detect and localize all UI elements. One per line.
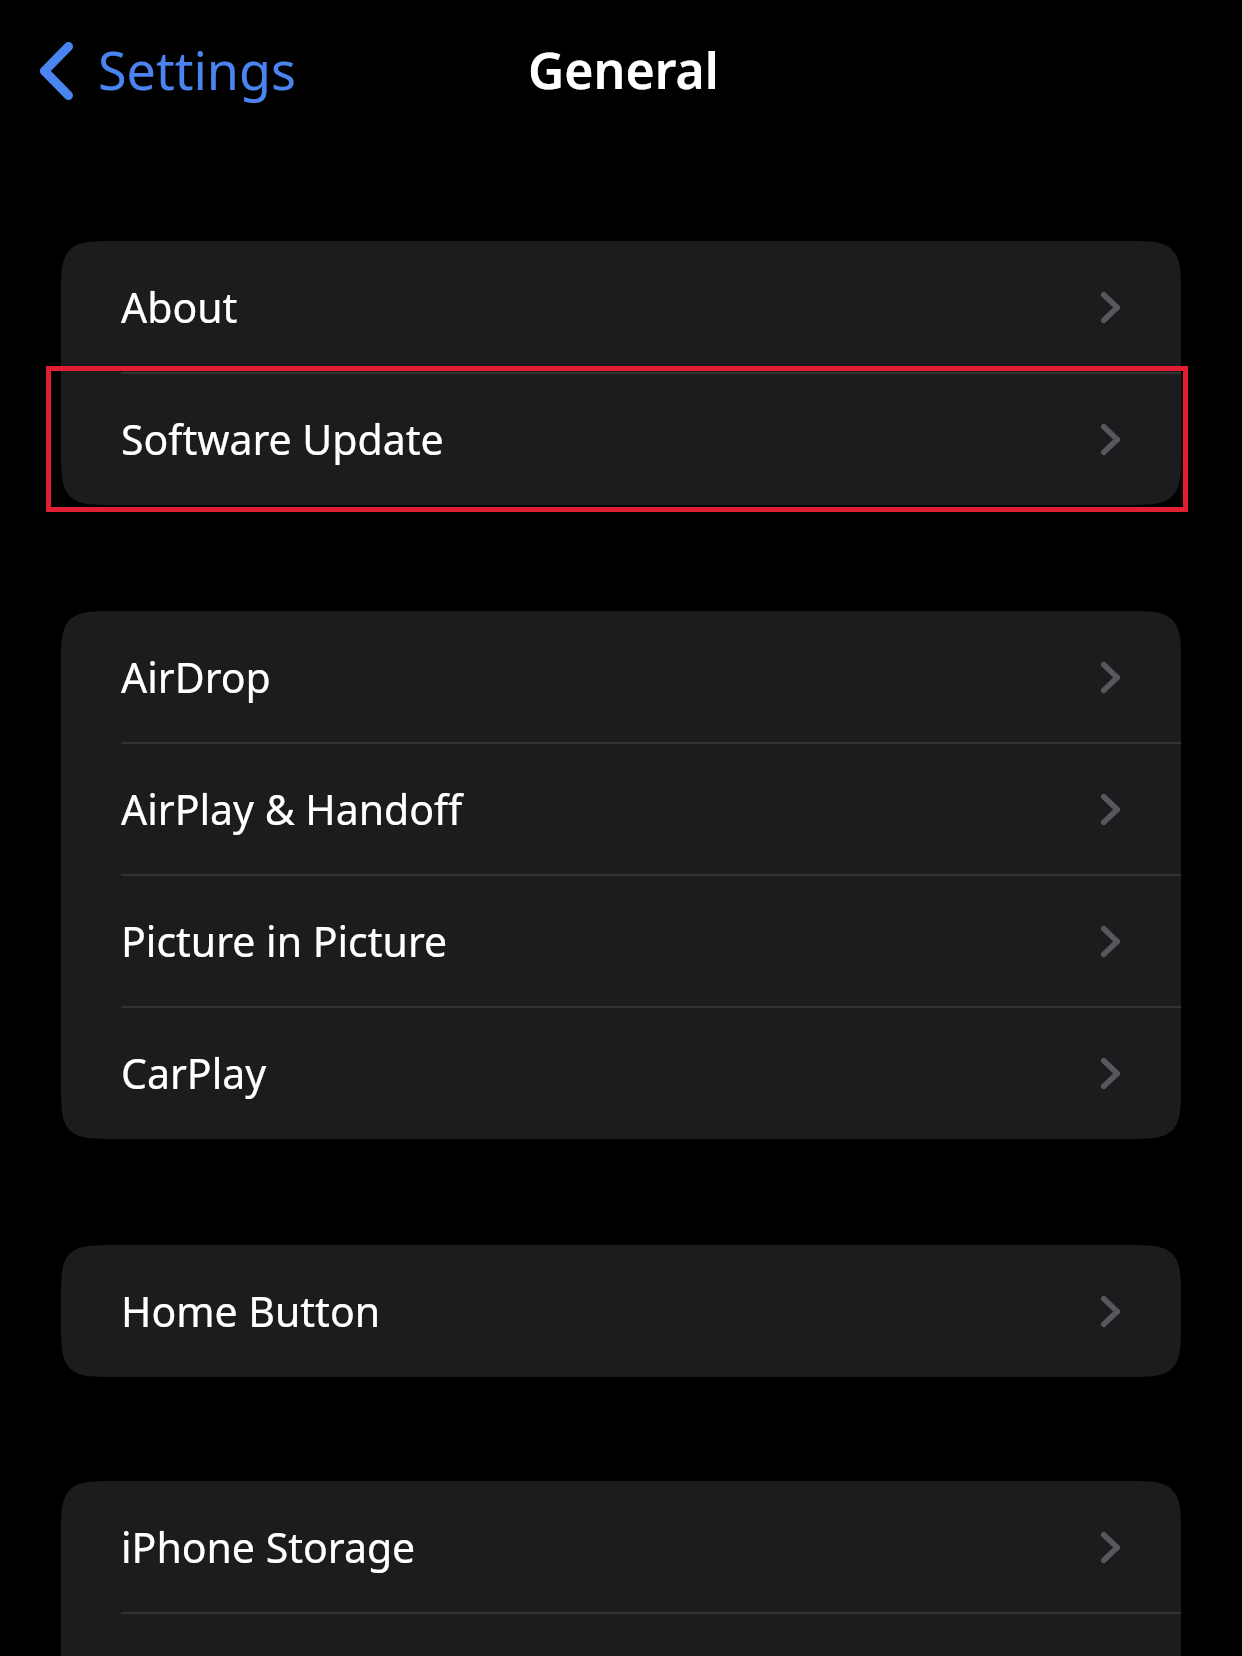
button[interactable]: iPhone Storage xyxy=(61,1481,1181,1613)
staticText: General xyxy=(528,36,719,104)
staticText: AirPlay & Handoff xyxy=(121,781,463,837)
button[interactable]: Back to Settings xyxy=(24,24,304,122)
button[interactable]: AirDrop xyxy=(61,611,1181,743)
button[interactable]: AirPlay & Handoff xyxy=(61,743,1181,875)
button[interactable]: Home Button xyxy=(61,1245,1181,1377)
staticText: Picture in Picture xyxy=(121,913,448,969)
button[interactable]: About xyxy=(61,241,1181,373)
staticText: CarPlay xyxy=(121,1045,267,1101)
staticText: Software Update xyxy=(121,411,444,467)
staticText: AirDrop xyxy=(121,649,271,705)
button[interactable]: CarPlay xyxy=(61,1007,1181,1139)
button[interactable]: Background App Refresh xyxy=(61,1613,1181,1656)
staticText: Home Button xyxy=(121,1283,381,1339)
staticText: About xyxy=(121,279,238,335)
button[interactable]: Picture in Picture xyxy=(61,875,1181,1007)
staticText: Settings xyxy=(98,34,296,105)
staticText: iPhone Storage xyxy=(121,1519,416,1575)
button[interactable]: Software Update xyxy=(61,373,1181,505)
